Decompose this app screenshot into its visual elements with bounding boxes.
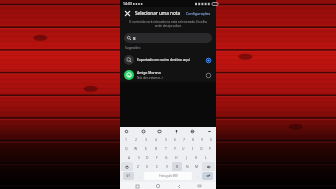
button[interactable]: GIF xyxy=(156,128,163,135)
button[interactable]: D xyxy=(143,153,152,162)
button[interactable]: 4 xyxy=(151,135,161,144)
button[interactable]: Backspace xyxy=(202,162,215,171)
button[interactable]: 5 xyxy=(161,135,170,144)
staticText: 1 xyxy=(125,137,127,142)
staticText: M xyxy=(195,164,199,169)
button[interactable]: I xyxy=(188,144,197,153)
button[interactable]: More xyxy=(206,128,213,135)
button[interactable]: R xyxy=(151,144,161,153)
button[interactable]: Configurações xyxy=(184,10,213,17)
staticText: A xyxy=(128,155,131,160)
staticText: L xyxy=(205,155,207,160)
button[interactable]: K xyxy=(191,153,201,162)
button[interactable]: M xyxy=(192,162,202,171)
staticText: R xyxy=(155,146,158,151)
button[interactable]: G xyxy=(161,153,171,162)
button[interactable]: Hide keyboard xyxy=(196,183,202,189)
staticText: 14:03 xyxy=(123,1,132,6)
button[interactable]: S xyxy=(134,153,143,162)
button[interactable]: 8 xyxy=(188,135,197,144)
button[interactable]: Settings xyxy=(123,128,130,135)
staticText: H xyxy=(175,155,178,160)
staticText: G xyxy=(165,155,168,160)
staticText: B xyxy=(176,164,179,169)
staticText: E xyxy=(145,146,147,151)
button[interactable]: Enter xyxy=(202,172,213,180)
staticText: 4 xyxy=(155,137,157,142)
staticText: U xyxy=(182,146,185,151)
staticText: V xyxy=(166,164,169,169)
button[interactable]: Home xyxy=(155,183,161,189)
button[interactable]: Exportado em outro destino aqui xyxy=(120,52,216,67)
button[interactable]: Stickers xyxy=(140,128,147,135)
staticText: T xyxy=(165,146,167,151)
button[interactable]: Selected xyxy=(204,56,212,64)
button[interactable]: 7 xyxy=(179,135,188,144)
button[interactable]: Not selected xyxy=(204,71,212,79)
button[interactable]: 0 xyxy=(206,135,215,144)
staticText: B xyxy=(133,36,136,41)
button[interactable]: 9 xyxy=(197,135,206,144)
staticText: 3 xyxy=(145,137,147,142)
button[interactable]: 2 xyxy=(131,135,141,144)
staticText: O xyxy=(200,146,203,151)
button[interactable]: Amigo Moreno xyxy=(120,67,216,82)
button[interactable]: L xyxy=(201,153,211,162)
button[interactable]: Translate xyxy=(189,128,196,135)
button[interactable]: 3 xyxy=(141,135,151,144)
button[interactable]: N xyxy=(182,162,192,171)
button[interactable]: Recents xyxy=(134,183,140,189)
staticText: Exportado em outro destino aqui xyxy=(137,57,190,62)
staticText: N xyxy=(186,164,189,169)
staticText: Q xyxy=(125,146,128,151)
button[interactable]: E xyxy=(141,144,151,153)
button[interactable]: C xyxy=(152,162,162,171)
button[interactable]: A xyxy=(125,153,134,162)
button[interactable]: B xyxy=(124,33,212,43)
button[interactable]: , xyxy=(135,172,143,180)
staticText: Nós dois estamos -> xyxy=(137,76,164,80)
staticText: I xyxy=(192,146,194,151)
button[interactable]: T xyxy=(161,144,170,153)
staticText: S xyxy=(138,155,140,160)
staticText: 5 xyxy=(165,137,167,142)
button[interactable]: F xyxy=(152,153,161,162)
button[interactable]: Z xyxy=(133,162,142,171)
staticText: W xyxy=(134,146,138,151)
button[interactable]: H xyxy=(171,153,181,162)
button[interactable]: U xyxy=(179,144,188,153)
button[interactable]: Back xyxy=(175,183,181,189)
button[interactable]: 1 xyxy=(121,135,131,144)
staticText: C xyxy=(156,164,159,169)
staticText: O conteúdo será colocado na nota selecio… xyxy=(126,20,210,28)
staticText: 7 xyxy=(183,137,185,142)
staticText: Amigo Moreno xyxy=(137,70,161,75)
staticText: Configurações xyxy=(186,11,211,16)
button[interactable]: Voice input xyxy=(173,128,180,135)
staticText: 9 xyxy=(201,137,203,142)
button[interactable]: X xyxy=(142,162,152,171)
button[interactable]: !#1 xyxy=(123,172,134,180)
button[interactable]: Y xyxy=(170,144,179,153)
button[interactable]: Shift xyxy=(121,162,133,171)
staticText: Sugestões xyxy=(125,46,141,50)
button[interactable]: P xyxy=(206,144,215,153)
staticText: Português (BR) xyxy=(159,174,178,178)
staticText: F xyxy=(156,155,158,160)
button[interactable]: W xyxy=(131,144,141,153)
staticText: X xyxy=(146,164,148,169)
staticText: P xyxy=(209,146,212,151)
button[interactable]: J xyxy=(181,153,191,162)
button[interactable]: Close xyxy=(123,9,132,18)
button[interactable]: V xyxy=(162,162,172,171)
button[interactable]: Q xyxy=(121,144,131,153)
button[interactable]: 6 xyxy=(170,135,179,144)
staticText: 8 xyxy=(192,137,194,142)
staticText: , xyxy=(139,174,140,178)
button[interactable]: B xyxy=(172,162,182,171)
staticText: K xyxy=(195,155,198,160)
button[interactable]: O xyxy=(197,144,206,153)
staticText: !#1 xyxy=(126,174,131,178)
button[interactable]: Português (BR) xyxy=(144,172,192,180)
